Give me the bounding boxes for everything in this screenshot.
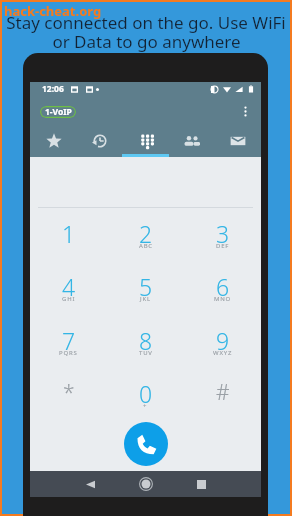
button[interactable]: 9 [184, 325, 261, 378]
staticText: 1-VoIP [45, 106, 72, 118]
button[interactable]: 1-VoIP [40, 106, 76, 118]
button[interactable]: Recents [190, 473, 212, 495]
button[interactable]: 0 [107, 378, 184, 431]
staticText: + [143, 402, 148, 410]
button[interactable]: * [30, 378, 107, 431]
staticText: 8 [139, 325, 153, 356]
button[interactable]: Recents [77, 126, 123, 157]
button[interactable]: 2 [107, 218, 184, 271]
button[interactable]: Dialpad [123, 126, 169, 157]
staticText: GHI [62, 295, 76, 303]
button[interactable]: 8 [107, 325, 184, 378]
button[interactable]: Back [79, 473, 101, 495]
staticText: 0 [139, 378, 153, 409]
staticText: 4 [62, 271, 76, 302]
staticText: DEF [216, 242, 230, 250]
staticText: WXYZ [213, 349, 233, 357]
staticText: 7 [62, 325, 76, 356]
button[interactable]: 5 [107, 271, 184, 324]
button[interactable]: 1 [30, 218, 107, 271]
button[interactable]: Home [135, 473, 157, 495]
staticText: # [216, 378, 230, 407]
button[interactable]: 6 [184, 271, 261, 324]
staticText: 6 [216, 271, 230, 302]
staticText: * [63, 378, 75, 407]
button[interactable]: 4 [30, 271, 107, 324]
staticText: 1 [62, 218, 76, 249]
button[interactable]: Favorites [30, 126, 77, 157]
button[interactable]: Contacts [169, 126, 215, 157]
staticText: PQRS [59, 349, 78, 357]
staticText: 5 [139, 271, 153, 302]
staticText: 3 [216, 218, 230, 249]
staticText: hack-cheat.org [4, 2, 102, 20]
staticText: TUV [139, 349, 153, 357]
staticText: Stay connected on the go. Use WiFi [6, 11, 286, 34]
button[interactable]: 7 [30, 325, 107, 378]
staticText: JKL [140, 295, 151, 303]
staticText: 2 [139, 218, 153, 249]
staticText: MNO [214, 295, 232, 303]
button[interactable]: # [184, 378, 261, 431]
button[interactable]: More options [232, 98, 258, 124]
button[interactable]: Voicemail [215, 126, 261, 157]
staticText: or Data to go anywhere [52, 30, 241, 53]
button[interactable]: 3 [184, 218, 261, 271]
staticText: 12:06 [42, 83, 64, 95]
staticText: ABC [139, 242, 153, 250]
staticText: 9 [216, 325, 230, 356]
button[interactable]: Call [124, 422, 168, 466]
